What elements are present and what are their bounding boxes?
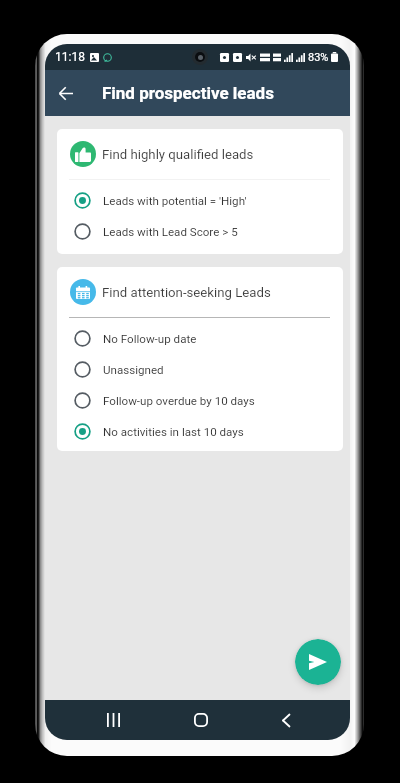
staticText: Follow-up overdue by 10 days xyxy=(103,394,255,408)
staticText: 83% xyxy=(308,51,329,64)
staticText: No Follow-up date xyxy=(103,332,197,346)
staticText: Find attention-seeking Leads xyxy=(102,285,271,300)
staticText: Find highly qualified leads xyxy=(102,147,254,162)
button[interactable]: Send xyxy=(295,639,341,685)
button[interactable]: Leads with Lead Score > 5 xyxy=(57,216,343,247)
button[interactable]: No activities in last 10 days xyxy=(57,416,343,447)
button[interactable]: Back xyxy=(49,76,83,110)
button[interactable]: No Follow-up date xyxy=(57,323,343,354)
button[interactable]: Follow-up overdue by 10 days xyxy=(57,385,343,416)
staticText: Unassigned xyxy=(103,363,164,377)
button[interactable]: Leads with potential = 'High' xyxy=(57,185,343,216)
button[interactable]: Recent apps xyxy=(94,701,132,739)
staticText: Leads with potential = 'High' xyxy=(103,194,247,208)
staticText: Leads with Lead Score > 5 xyxy=(103,225,238,239)
button[interactable]: Unassigned xyxy=(57,354,343,385)
staticText: No activities in last 10 days xyxy=(103,425,244,439)
staticText: 11:18 xyxy=(55,50,85,64)
button[interactable]: Back xyxy=(267,701,305,739)
button[interactable]: Home xyxy=(182,701,220,739)
staticText: Find prospective leads xyxy=(102,83,274,103)
